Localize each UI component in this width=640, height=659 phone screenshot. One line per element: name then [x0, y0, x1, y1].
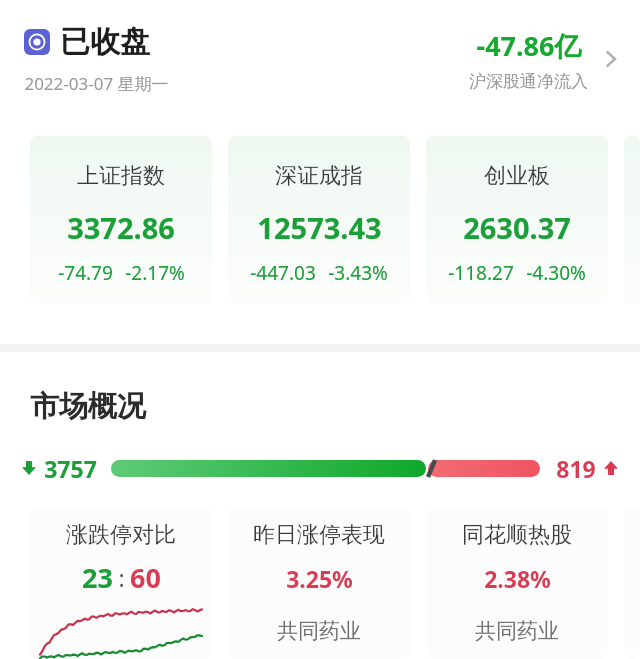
staticText: 2022-03-07 星期一 [24, 72, 169, 95]
staticText: 市场概况 [30, 388, 146, 425]
button[interactable]: 同花顺热股 [426, 507, 608, 659]
button[interactable] [624, 136, 640, 304]
staticText: -118.27 [448, 260, 514, 286]
other: Market closed [24, 29, 50, 55]
staticText: 沪深股通净流入 [469, 71, 588, 92]
staticText: 上证指数 [77, 162, 165, 190]
staticText: 3.25% [286, 563, 353, 594]
staticText: 已收盘 [60, 23, 150, 61]
staticText: 昨日涨停表现 [253, 521, 385, 549]
staticText: : [118, 562, 125, 593]
staticText: 涨跌停对比 [66, 521, 176, 549]
button[interactable]: 上证指数 [30, 136, 212, 304]
staticText: 共同药业 [475, 618, 559, 644]
staticText: 3757 [44, 453, 97, 484]
staticText: 60 [130, 559, 161, 596]
button[interactable]: 涨跌停对比 [30, 507, 212, 659]
staticText: 2.38% [484, 563, 551, 594]
staticText: 12573.43 [257, 208, 382, 247]
button[interactable]: 深证成指 [228, 136, 410, 304]
staticText: -2.17% [125, 260, 185, 286]
button[interactable]: 昨日涨停表现 [228, 507, 410, 659]
button[interactable]: More details [596, 44, 626, 74]
staticText: -4.30% [526, 260, 586, 286]
staticText: 2630.37 [463, 208, 571, 247]
button[interactable]: Market closed [0, 0, 640, 118]
staticText: 创业板 [484, 162, 550, 190]
staticText: 同花顺热股 [462, 521, 572, 549]
button[interactable]: 3757 [0, 451, 640, 485]
staticText: 共同药业 [277, 618, 361, 644]
staticText: 23 [82, 559, 113, 596]
staticText: 3372.86 [67, 208, 175, 247]
staticText: -447.03 [250, 260, 316, 286]
staticText: 深证成指 [275, 162, 363, 190]
staticText: -3.43% [328, 260, 388, 286]
staticText: -74.79 [58, 260, 113, 286]
button[interactable]: 创业板 [426, 136, 608, 304]
staticText: -47.86亿 [476, 27, 582, 64]
staticText: 819 [556, 453, 596, 484]
